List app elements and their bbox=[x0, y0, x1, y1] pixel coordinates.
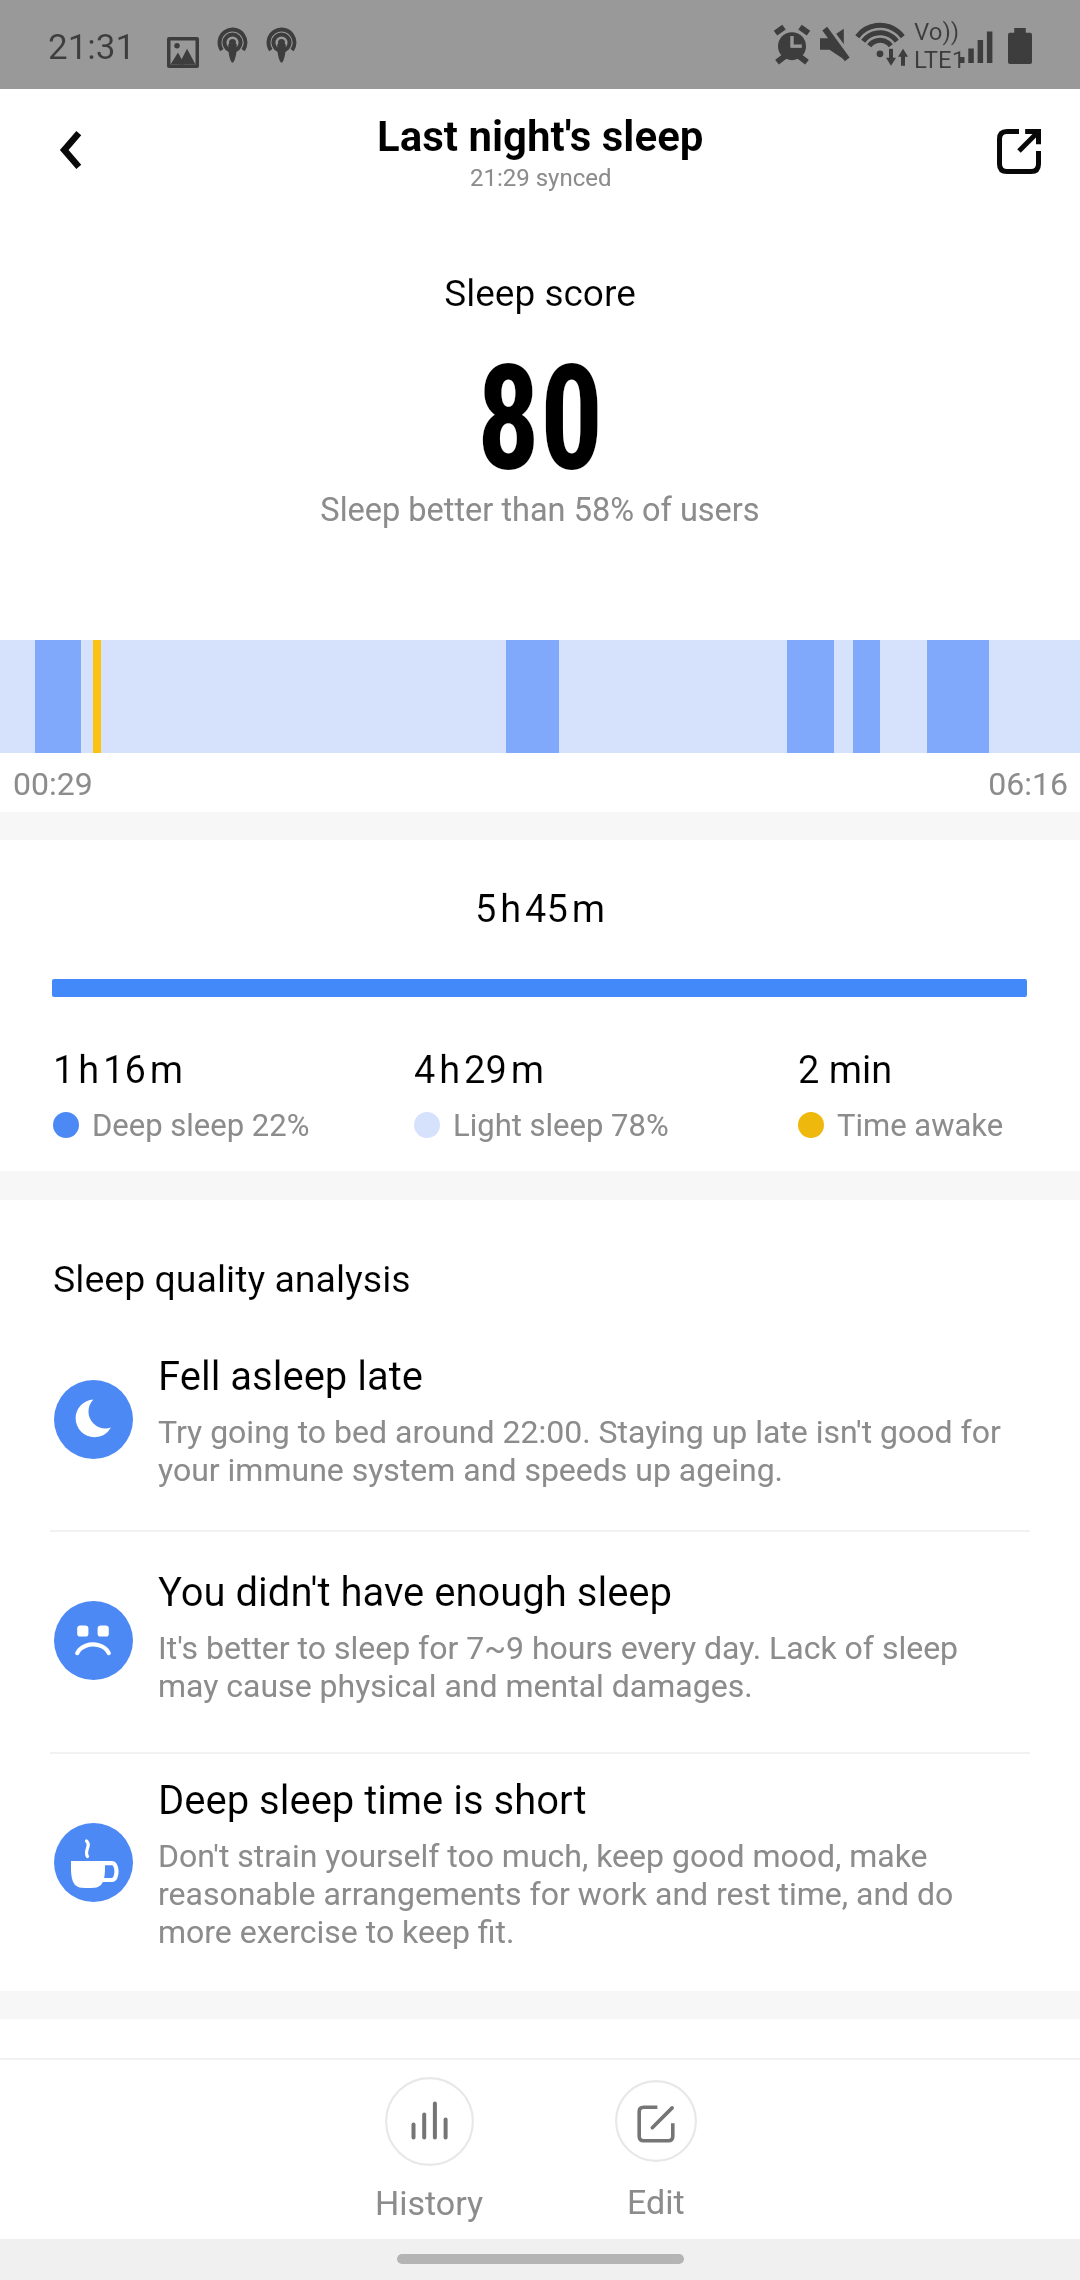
staticText: LTE1 bbox=[914, 46, 966, 74]
button[interactable]: History bbox=[339, 2077, 519, 2223]
staticText: 06:16 bbox=[0, 765, 1068, 803]
staticText: Last night's sleep bbox=[377, 112, 704, 161]
button[interactable]: Fell asleep late bbox=[158, 1353, 1010, 1489]
staticText: Try going to bed around 22:00. Staying u… bbox=[158, 1413, 1010, 1489]
button[interactable]: Back bbox=[31, 110, 111, 190]
staticText: 2 min bbox=[798, 1048, 893, 1093]
staticText: 5 h 45 m bbox=[0, 887, 1080, 932]
staticText: Don't strain yourself too much, keep goo… bbox=[158, 1837, 1010, 1951]
staticText: Time awake bbox=[837, 1107, 1004, 1143]
staticText: It's better to sleep for 7~9 hours every… bbox=[158, 1629, 1010, 1705]
staticText: Deep sleep 22% bbox=[92, 1107, 310, 1143]
staticText: 21:31 bbox=[48, 27, 136, 68]
button[interactable]: Share bbox=[978, 110, 1060, 192]
staticText: Sleep score bbox=[0, 272, 1080, 315]
staticText: 21:29 synced bbox=[470, 164, 612, 192]
staticText: 4 h 29 m bbox=[414, 1048, 544, 1093]
button[interactable]: Edit bbox=[566, 2080, 746, 2222]
staticText: History bbox=[375, 2183, 484, 2223]
staticText: Vo)) bbox=[914, 18, 960, 46]
staticText: You didn't have enough sleep bbox=[158, 1569, 673, 1616]
staticText: Deep sleep time is short bbox=[158, 1777, 587, 1824]
staticText: 80 bbox=[80, 333, 1000, 505]
staticText: Sleep better than 58% of users bbox=[0, 491, 1080, 529]
staticText: Fell asleep late bbox=[158, 1353, 423, 1400]
button[interactable]: Deep sleep time is short bbox=[158, 1777, 1010, 1951]
staticText: 1 h 16 m bbox=[53, 1048, 183, 1093]
staticText: Sleep quality analysis bbox=[53, 1257, 411, 1301]
staticText: 00:29 bbox=[13, 765, 93, 803]
button[interactable]: You didn't have enough sleep bbox=[158, 1569, 1010, 1705]
staticText: Light sleep 78% bbox=[453, 1107, 669, 1143]
staticText: Edit bbox=[627, 2182, 685, 2222]
